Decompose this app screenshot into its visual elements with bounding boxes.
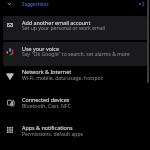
staticText: Suggestions (22, 1, 49, 7)
staticText: Set up your personal or work email (22, 25, 106, 32)
button[interactable] (0, 60, 150, 88)
staticText: Say "Ok Google" to search, set alarms & … (22, 51, 130, 58)
button[interactable] (3, 42, 147, 66)
button[interactable] (3, 16, 147, 40)
staticText: Wi-Fi, mobile, data usage, hotspot (22, 75, 103, 82)
staticText: 3 (142, 1, 145, 7)
staticText: Apps & notifications (22, 124, 73, 131)
staticText: Bluetooth, Cast, NFC (22, 103, 71, 110)
staticText: Add another email account (22, 19, 91, 26)
staticText: Use your voice (22, 45, 59, 52)
staticText: Permissions, default apps (22, 131, 83, 138)
button[interactable] (0, 88, 150, 116)
staticText: Connected devices (22, 96, 70, 103)
button[interactable] (0, 116, 150, 144)
staticText: Network & Internet (22, 68, 72, 75)
button[interactable]: Collapse suggestions (4, 0, 15, 9)
